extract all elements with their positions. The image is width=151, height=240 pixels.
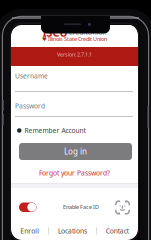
staticText: ♥ Illinois State Credit Union <box>42 35 107 43</box>
staticText: Log in <box>64 146 87 157</box>
staticText: ISCU <box>42 25 67 40</box>
staticText: Password <box>15 102 45 110</box>
button[interactable]: Log in <box>19 143 132 160</box>
staticText: Enroll <box>20 227 39 235</box>
button[interactable]: Enable Face ID toggle <box>0 0 151 240</box>
staticText: CreditUnion <box>68 28 106 37</box>
staticText: Locations <box>58 227 87 235</box>
staticText: Remember Account <box>24 126 85 135</box>
staticText: Contact <box>106 227 129 235</box>
button[interactable]: Enroll <box>20 227 39 235</box>
button[interactable]: Face ID <box>115 201 130 214</box>
button[interactable]: Forgot your Password? <box>39 169 110 177</box>
staticText: Username <box>15 72 48 80</box>
staticText: Version: 2.7.1.1 <box>57 51 92 58</box>
staticText: Enable Face ID <box>63 203 99 211</box>
staticText: Forgot your Password? <box>39 169 110 177</box>
button[interactable]: Contact <box>106 227 129 235</box>
button[interactable]: Locations <box>58 227 87 235</box>
